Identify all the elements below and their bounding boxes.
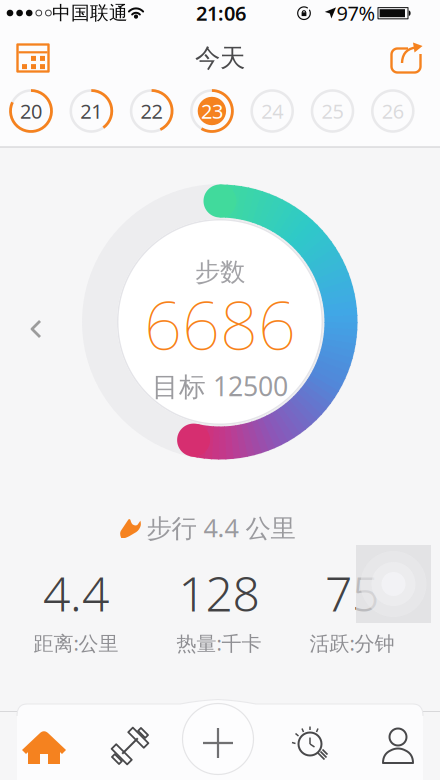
button[interactable]: 21 bbox=[69, 89, 113, 133]
button[interactable]: Share bbox=[384, 38, 428, 78]
staticText: 步数 bbox=[195, 256, 245, 287]
button[interactable]: Home bbox=[16, 724, 72, 768]
staticText: 25 bbox=[321, 98, 343, 124]
staticText: 75 bbox=[325, 561, 379, 625]
staticText: 21 bbox=[80, 98, 102, 124]
staticText: 6686 bbox=[144, 280, 296, 368]
staticText: 97% bbox=[336, 0, 375, 26]
staticText: 20 bbox=[20, 98, 42, 124]
staticText: 23 bbox=[201, 98, 223, 124]
staticText: 21:06 bbox=[196, 0, 246, 26]
button[interactable]: Discover bbox=[286, 724, 342, 768]
button[interactable]: 26 bbox=[371, 89, 415, 133]
button[interactable]: Add activity bbox=[182, 707, 254, 780]
staticText: 今天 bbox=[195, 42, 245, 73]
staticText: 中国联通 bbox=[52, 1, 128, 24]
button[interactable]: 22 bbox=[130, 89, 174, 133]
staticText: 热量:千卡 bbox=[176, 630, 261, 656]
button[interactable]: 24 bbox=[250, 89, 294, 133]
button[interactable]: 20 bbox=[9, 89, 53, 133]
staticText: 24 bbox=[261, 98, 283, 124]
button[interactable]: 25 bbox=[310, 89, 354, 133]
staticText: 距离:公里 bbox=[33, 630, 118, 656]
button[interactable]: Calendar bbox=[11, 37, 55, 77]
staticText: 活跃:分钟 bbox=[309, 630, 394, 656]
staticText: 22 bbox=[141, 98, 163, 124]
staticText: 4.4 bbox=[43, 561, 109, 625]
button[interactable]: Previous day bbox=[17, 307, 53, 351]
staticText: 步行 4.4 公里 bbox=[146, 511, 295, 544]
button[interactable]: Profile bbox=[370, 724, 426, 768]
staticText: 26 bbox=[382, 98, 404, 124]
button[interactable]: Workouts bbox=[102, 724, 158, 768]
staticText: 128 bbox=[178, 561, 259, 625]
staticText: 目标 12500 bbox=[152, 368, 288, 404]
button[interactable]: 23 bbox=[190, 89, 234, 133]
